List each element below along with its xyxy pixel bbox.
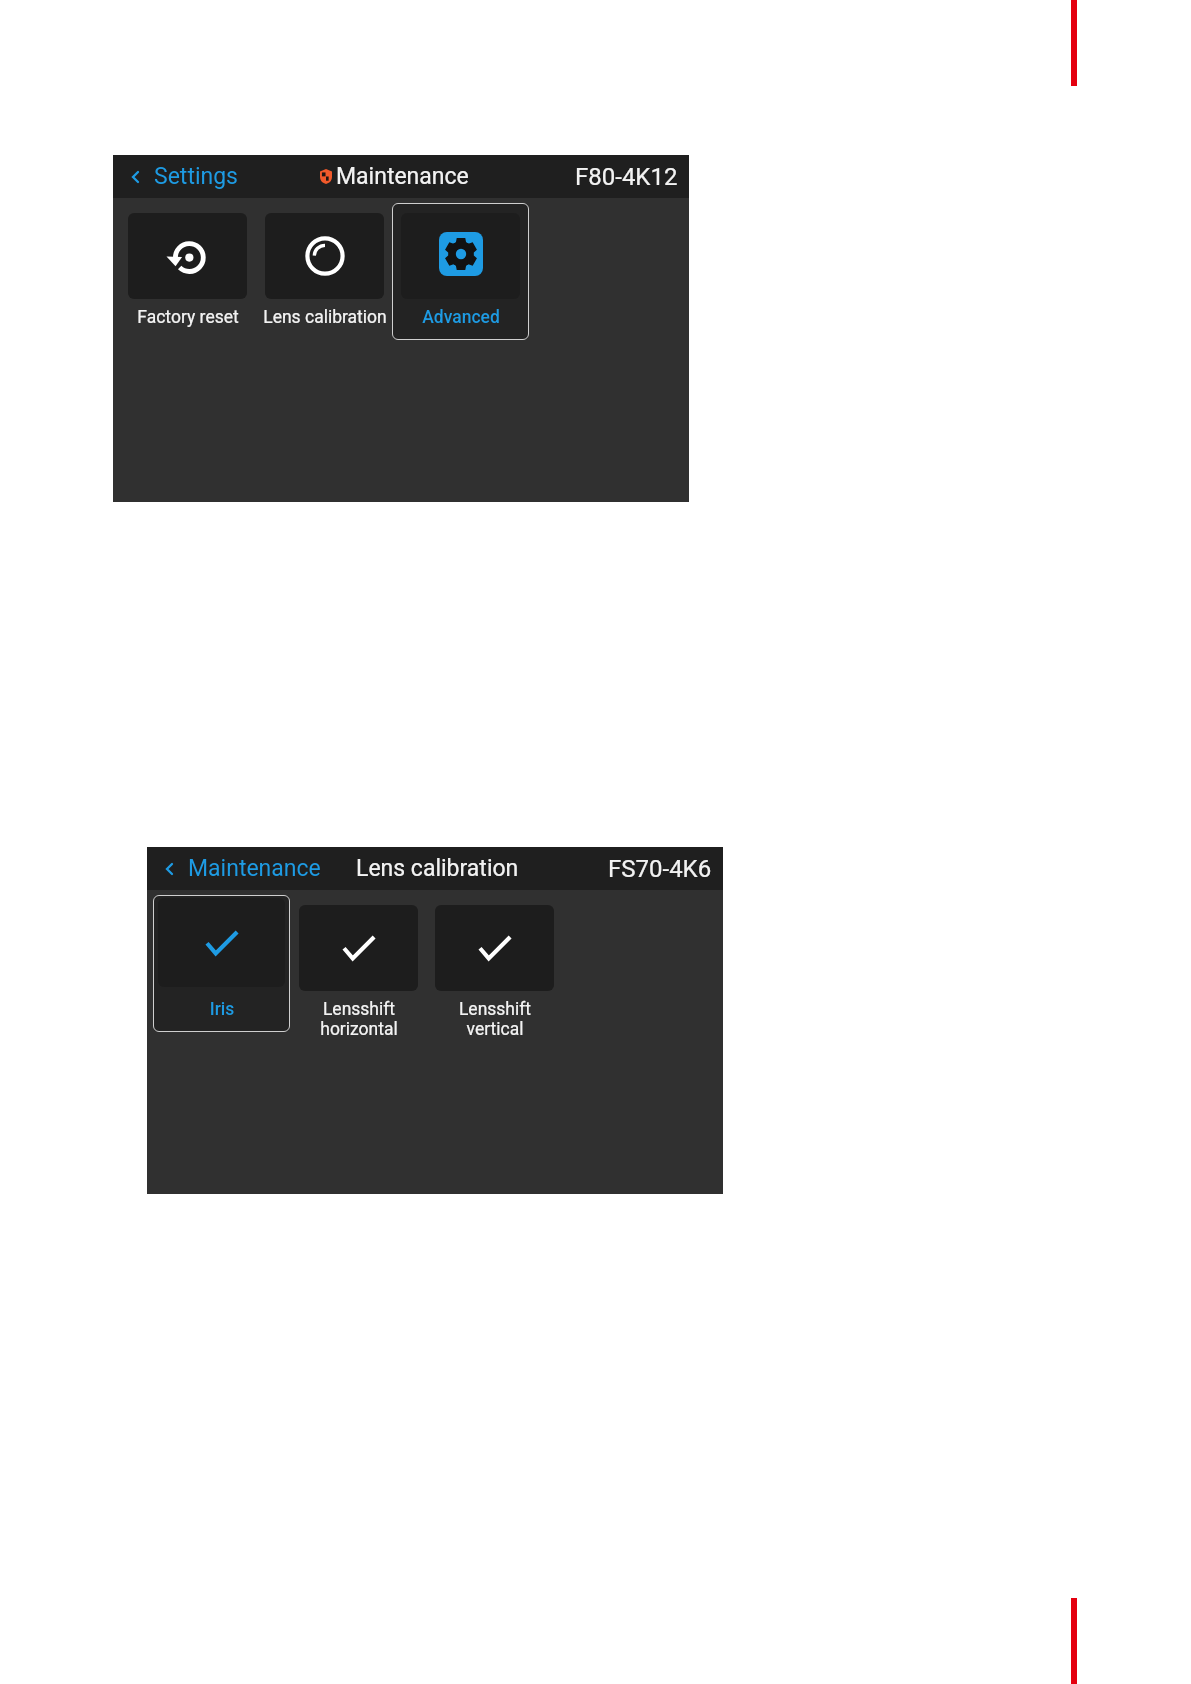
staticText: Lens calibration: [230, 307, 420, 328]
other: Lens calibration: [305, 236, 345, 276]
other: Selected: [342, 935, 376, 961]
button[interactable]: Selected: [290, 895, 427, 1032]
button[interactable]: Selected: [426, 895, 563, 1032]
staticText: Lensshift horizontal: [264, 999, 454, 1039]
staticText: Lensshift vertical: [400, 999, 590, 1039]
staticText: FS70-4K6: [608, 855, 712, 883]
button[interactable]: Lens calibration: [256, 203, 393, 340]
other: Selected: [205, 930, 239, 956]
staticText: Iris: [127, 999, 317, 1020]
staticText: Maintenance: [188, 855, 321, 882]
other: Advanced: [439, 232, 483, 276]
staticText: Factory reset: [93, 307, 283, 328]
button[interactable]: Advanced: [392, 203, 529, 340]
button[interactable]: Selected: [153, 895, 290, 1032]
button[interactable]: Settings: [113, 155, 248, 198]
staticText: F80-4K12: [575, 163, 678, 191]
staticText: Maintenance: [336, 163, 469, 190]
button[interactable]: Factory reset: [119, 203, 256, 340]
staticText: Lens calibration: [356, 855, 519, 882]
other: Factory reset: [167, 236, 208, 277]
staticText: Settings: [154, 163, 238, 190]
button[interactable]: Maintenance: [147, 847, 331, 890]
other: Selected: [478, 935, 512, 961]
staticText: Advanced: [366, 307, 556, 328]
